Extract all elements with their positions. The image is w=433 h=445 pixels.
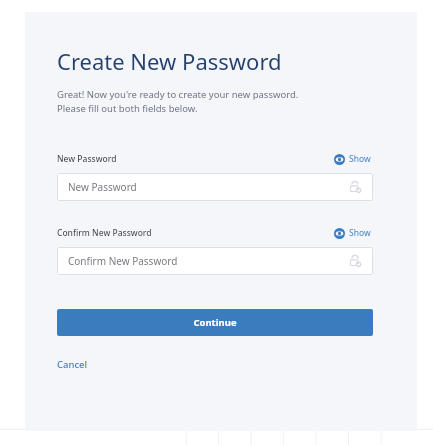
staticText: New Password <box>68 180 137 194</box>
other: Password secured <box>348 180 362 194</box>
staticText: Cancel <box>57 358 88 371</box>
button[interactable]: Cancel <box>57 356 88 373</box>
staticText: Show <box>349 153 371 165</box>
staticText: Continue <box>193 316 237 329</box>
staticText: Great! Now you're ready to create your n… <box>57 88 299 115</box>
staticText: Confirm New Password <box>68 254 178 268</box>
button[interactable]: Show <box>332 225 373 241</box>
button[interactable]: New Password <box>57 173 373 201</box>
staticText: New Password <box>57 153 117 165</box>
staticText: Show <box>349 227 371 239</box>
other: Password secured <box>348 254 362 268</box>
staticText: Create New Password <box>57 46 282 76</box>
staticText: Confirm New Password <box>57 227 152 239</box>
button[interactable]: Continue <box>57 309 373 336</box>
button[interactable]: Show <box>332 151 373 167</box>
button[interactable]: Confirm New Password <box>57 247 373 275</box>
